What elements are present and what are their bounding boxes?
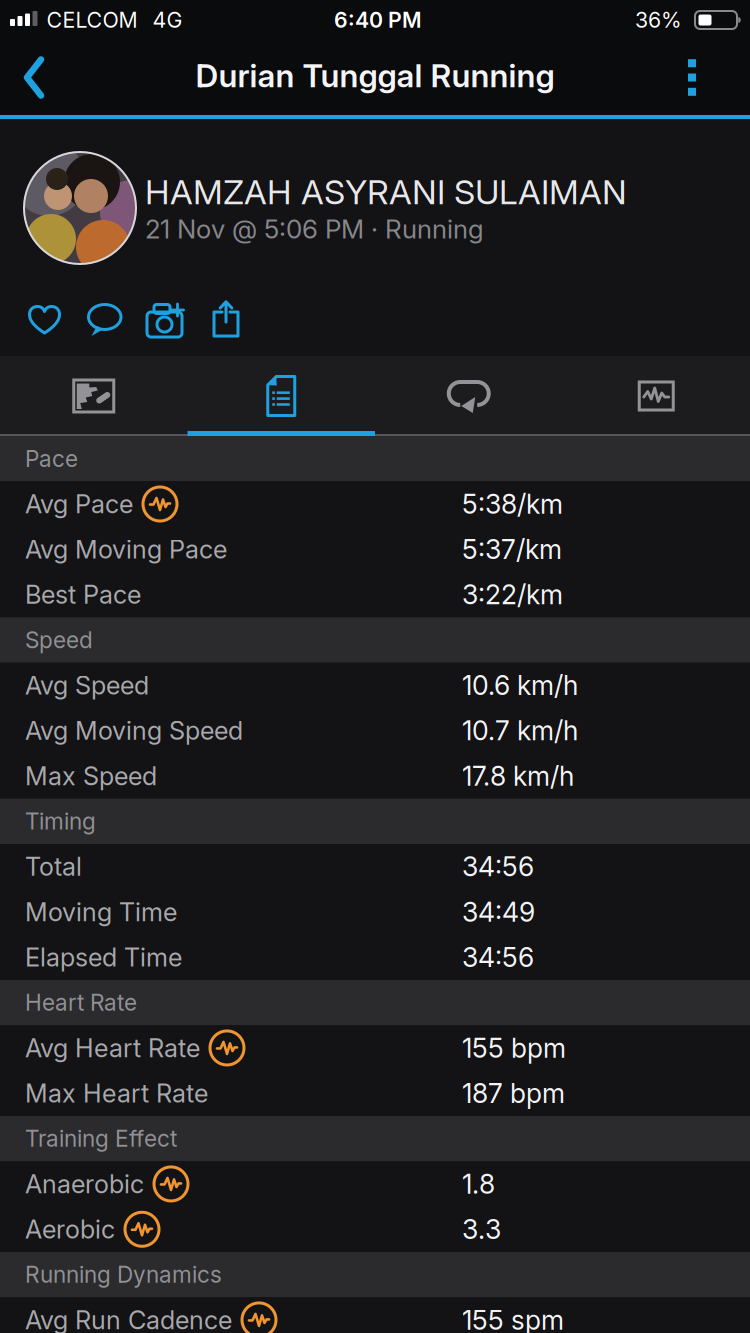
staticText: 5:37/km: [462, 533, 562, 565]
staticText: 21 Nov @ 5:06 PM · Running: [145, 213, 484, 245]
button[interactable]: Share: [204, 298, 248, 342]
button[interactable]: Stats: [187, 356, 375, 436]
button[interactable]: Laps: [375, 356, 562, 436]
staticText: 10.6 km/h: [462, 669, 578, 701]
staticText: Running Dynamics: [25, 1261, 222, 1288]
staticText: 10.7 km/h: [462, 714, 578, 747]
button[interactable]: More options: [634, 40, 750, 115]
staticText: Anaerobic: [25, 1169, 144, 1199]
staticText: Pace: [25, 445, 78, 472]
staticText: Avg Heart Rate: [25, 1033, 200, 1063]
staticText: Avg Run Cadence: [25, 1305, 232, 1333]
staticText: 155 bpm: [462, 1032, 566, 1064]
button[interactable]: Back: [0, 40, 90, 115]
staticText: Aerobic: [25, 1214, 115, 1245]
button[interactable]: Comment: [83, 298, 127, 342]
staticText: Avg Speed: [25, 670, 149, 701]
staticText: 1.8: [462, 1168, 495, 1200]
staticText: 34:56: [462, 850, 534, 883]
staticText: Avg Pace: [25, 489, 133, 519]
staticText: Timing: [25, 808, 96, 835]
button[interactable]: Like: [22, 298, 66, 342]
staticText: Heart Rate: [25, 989, 137, 1016]
staticText: 34:49: [462, 896, 535, 928]
staticText: 36%: [635, 7, 682, 33]
button[interactable]: Charts: [562, 356, 750, 436]
staticText: HAMZAH ASYRANI SULAIMAN: [145, 171, 627, 212]
staticText: Avg Moving Pace: [25, 534, 227, 565]
staticText: CELCOM: [46, 7, 137, 33]
staticText: Durian Tunggal Running: [195, 56, 554, 95]
staticText: 17.8 km/h: [462, 760, 574, 792]
staticText: Max Speed: [25, 761, 157, 791]
staticText: Total: [25, 851, 82, 882]
staticText: 155 spm: [462, 1304, 564, 1333]
staticText: 3:22/km: [462, 578, 563, 611]
staticText: Moving Time: [25, 897, 177, 927]
staticText: Max Heart Rate: [25, 1078, 208, 1109]
staticText: 6:40 PM: [334, 7, 422, 33]
staticText: Speed: [25, 626, 93, 654]
staticText: Training Effect: [25, 1125, 177, 1152]
staticText: 5:38/km: [462, 488, 563, 520]
staticText: 187 bpm: [462, 1077, 565, 1109]
staticText: Avg Moving Speed: [25, 715, 243, 746]
staticText: Elapsed Time: [25, 942, 182, 973]
staticText: 3.3: [462, 1213, 501, 1245]
staticText: 34:56: [462, 941, 534, 973]
staticText: Best Pace: [25, 579, 141, 610]
button[interactable]: Photos and map: [0, 356, 187, 436]
button[interactable]: Add photo: [143, 298, 187, 342]
staticText: 4G: [152, 7, 182, 33]
